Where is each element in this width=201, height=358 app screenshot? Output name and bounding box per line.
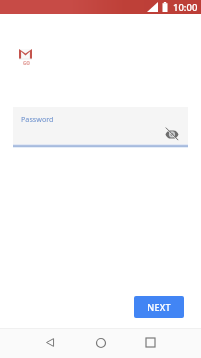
button[interactable]: Password	[13, 107, 188, 147]
staticText: NEXT	[147, 301, 171, 313]
button[interactable]: Back	[39, 331, 62, 354]
button[interactable]: NEXT	[134, 296, 184, 318]
button[interactable]: Show password	[162, 125, 180, 143]
staticText: 10:00	[173, 1, 198, 14]
staticText: GO	[23, 60, 30, 66]
button[interactable]: Home	[89, 331, 112, 354]
button[interactable]: Recent apps	[139, 331, 162, 354]
staticText: Password	[21, 114, 54, 124]
